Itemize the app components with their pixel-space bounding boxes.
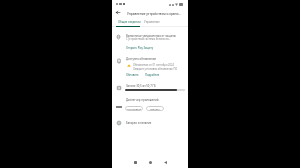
staticText: Удалить bbox=[150, 107, 160, 110]
staticText: С устройством системы безопасности bbox=[126, 37, 171, 40]
staticText: Открыть Play Защиту bbox=[126, 46, 154, 50]
staticText: Управление bbox=[144, 20, 160, 24]
button[interactable]: Управление bbox=[142, 18, 161, 28]
staticText: Занято 30,5 из 50,7 ГБ bbox=[126, 84, 156, 88]
staticText: Ожидает установки обновление ПО bbox=[133, 67, 178, 70]
button[interactable]: Back bbox=[161, 158, 169, 166]
button[interactable]: Открыть Play Защиту bbox=[126, 46, 154, 50]
staticText: Общие сведения bbox=[118, 20, 141, 24]
button[interactable]: Recent apps bbox=[131, 158, 139, 166]
button[interactable]: Подробнее bbox=[145, 73, 160, 77]
staticText: Управление устройством и хранилищем bbox=[127, 12, 181, 16]
staticText: Диспетчер приложений bbox=[126, 98, 159, 102]
staticText: Остановить bbox=[127, 107, 142, 110]
staticText: Подробнее bbox=[145, 73, 160, 77]
staticText: Обновление от 01 сентября 2024 bbox=[133, 63, 174, 66]
button[interactable]: Удалить bbox=[146, 106, 164, 111]
button[interactable]: Back bbox=[112, 8, 123, 17]
staticText: Батарея и питание bbox=[126, 121, 152, 125]
button[interactable]: Обновить bbox=[126, 73, 139, 77]
button[interactable]: Home bbox=[146, 158, 154, 166]
staticText: Временные уведомления от защиты bbox=[126, 34, 176, 38]
button[interactable]: Общие сведения bbox=[116, 18, 140, 28]
staticText: Доступно обновление bbox=[126, 57, 157, 61]
staticText: Обновить bbox=[126, 73, 139, 77]
button[interactable]: Остановить bbox=[125, 106, 143, 111]
